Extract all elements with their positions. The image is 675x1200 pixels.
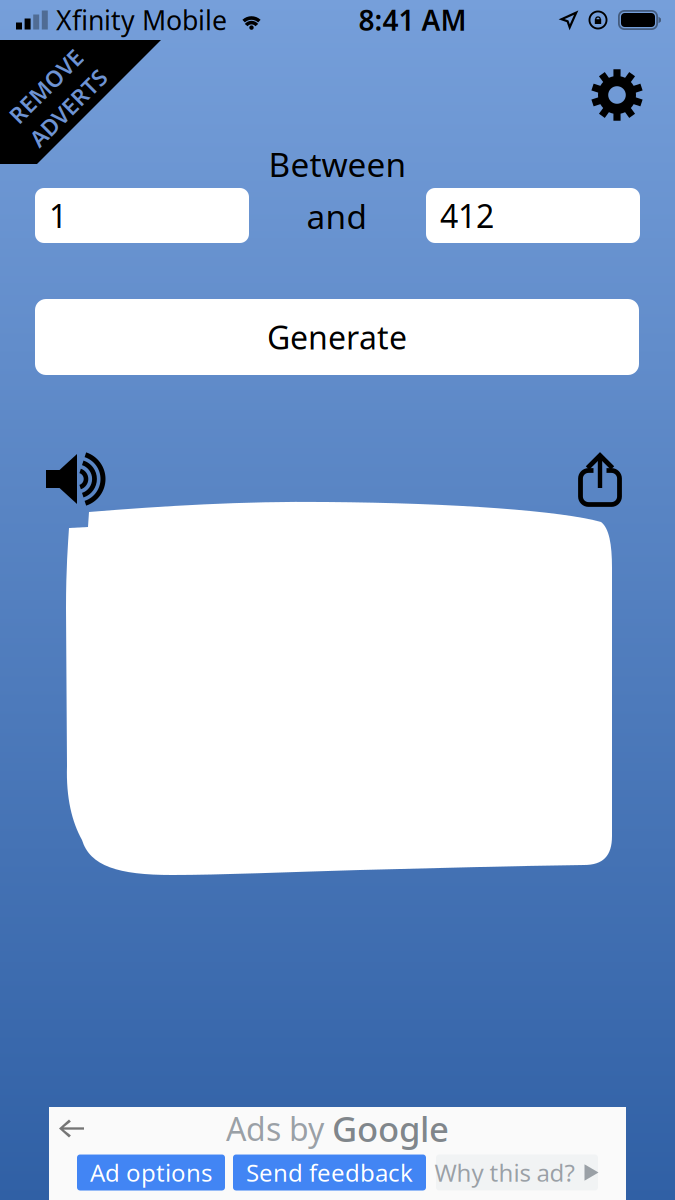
button[interactable]: Send feedback [233, 1154, 426, 1190]
button[interactable]: 412 [426, 188, 640, 243]
staticText: Send feedback [246, 1157, 413, 1188]
staticText: Ad options [90, 1157, 212, 1188]
staticText: 1 [49, 194, 67, 237]
staticText: Generate [267, 316, 407, 358]
staticText: REMOVE [10, 66, 104, 96]
button[interactable]: Speak result [38, 446, 112, 512]
staticText: Between [268, 142, 406, 186]
staticText: ADVERTS [8, 97, 106, 128]
staticText: 8:41 AM [358, 1, 466, 39]
staticText: Xfinity Mobile [56, 2, 227, 38]
staticText: Why this ad? [434, 1157, 574, 1188]
button[interactable]: Remove Adverts [0, 40, 161, 164]
button[interactable]: Back [49, 1107, 98, 1149]
staticText: and [306, 194, 367, 238]
staticText: Google [332, 1105, 449, 1151]
button[interactable]: Ad options [77, 1154, 225, 1190]
button[interactable]: Generate [35, 299, 639, 375]
button[interactable]: Settings [581, 59, 653, 131]
button[interactable]: Share [570, 445, 630, 515]
button[interactable]: Why this ad? [436, 1154, 598, 1190]
staticText: 412 [440, 194, 494, 237]
button[interactable]: 1 [35, 188, 249, 243]
staticText: Ads by [226, 1107, 324, 1150]
